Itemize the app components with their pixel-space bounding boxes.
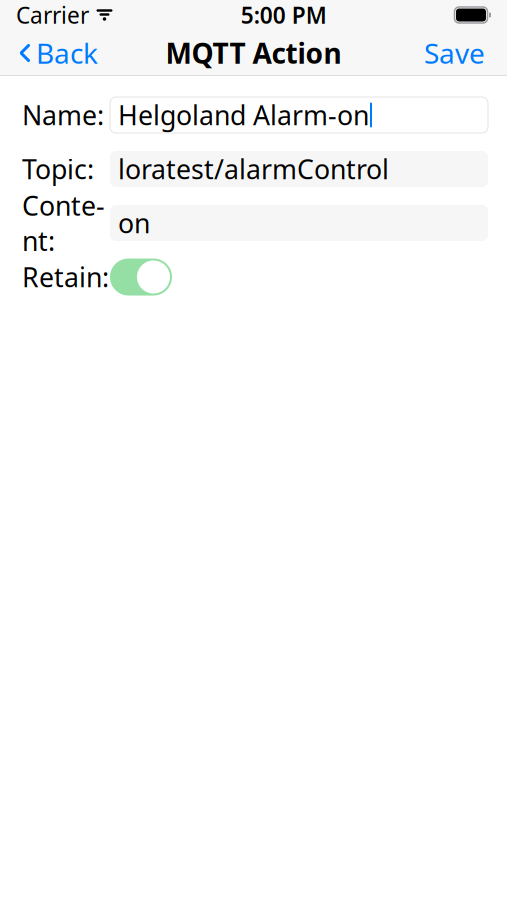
button[interactable]: Back xyxy=(6,31,110,75)
staticText: Carrier xyxy=(16,0,89,30)
staticText: Helgoland Alarm-on xyxy=(118,97,369,133)
staticText: 5:00 PM xyxy=(241,0,327,30)
staticText: Back xyxy=(36,34,98,72)
staticText: loratest/alarmControl xyxy=(118,151,389,187)
button[interactable]: Save xyxy=(408,31,501,75)
staticText: on xyxy=(118,205,150,241)
staticText: Save xyxy=(424,34,485,72)
staticText: Content: xyxy=(22,188,105,258)
staticText: Topic: xyxy=(22,151,94,187)
staticText: MQTT Action xyxy=(165,34,341,72)
button[interactable]: Retain xyxy=(110,258,172,295)
staticText: Name: xyxy=(22,97,104,133)
staticText: Retain: xyxy=(22,259,109,295)
